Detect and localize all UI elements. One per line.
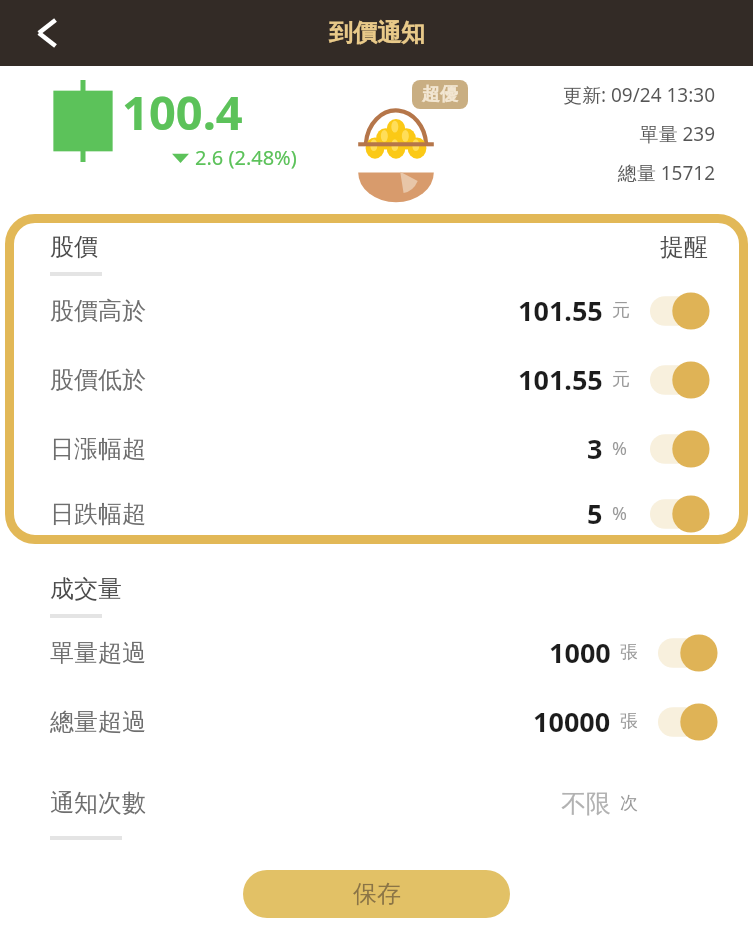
staticText: 1000	[549, 634, 611, 671]
staticText: 100.4	[122, 80, 243, 144]
staticText: 成交量	[50, 574, 122, 604]
staticText: 股價	[50, 232, 98, 262]
button[interactable]: 保存	[243, 870, 510, 918]
staticText: 到價通知	[329, 18, 425, 48]
staticText: 單量 239	[639, 121, 715, 147]
staticText: 通知次數	[50, 788, 146, 818]
staticText: %	[612, 501, 627, 526]
button[interactable]: 日漲幅超	[5, 414, 748, 483]
staticText: 10000	[533, 703, 611, 740]
button[interactable]: 通知次數	[0, 776, 753, 830]
staticText: 提醒	[660, 232, 708, 262]
staticText: 元	[612, 299, 630, 322]
staticText: 2.6 (2.48%)	[195, 144, 297, 171]
staticText: 張	[620, 641, 638, 664]
staticText: 元	[612, 368, 630, 391]
button[interactable]: 股價高於	[5, 276, 748, 345]
staticText: 股價高於	[50, 296, 146, 326]
staticText: 不限	[561, 788, 611, 819]
staticText: 次	[620, 792, 638, 815]
staticText: 單量超過	[50, 638, 146, 668]
staticText: 超優	[422, 83, 458, 106]
staticText: 5	[587, 495, 603, 532]
button[interactable]: 總量超過	[0, 687, 753, 756]
staticText: 日漲幅超	[50, 434, 146, 464]
staticText: %	[612, 436, 627, 461]
button[interactable]: Toggle alert	[658, 703, 720, 741]
staticText: 保存	[353, 879, 401, 909]
button[interactable]: 單量超過	[0, 618, 753, 687]
button[interactable]: Toggle alert	[650, 361, 712, 399]
button[interactable]: Toggle alert	[658, 634, 720, 672]
staticText: 101.55	[518, 361, 603, 398]
button[interactable]: Back	[16, 7, 68, 59]
button[interactable]: 日跌幅超	[5, 483, 748, 544]
staticText: 日跌幅超	[50, 499, 146, 529]
button[interactable]: Toggle alert	[650, 292, 712, 330]
button[interactable]: 股價低於	[5, 345, 748, 414]
staticText: 101.55	[518, 292, 603, 329]
staticText: 總量超過	[50, 707, 146, 737]
staticText: 股價低於	[50, 365, 146, 395]
staticText: 3	[587, 430, 603, 467]
button[interactable]: Toggle alert	[650, 430, 712, 468]
staticText: 更新: 09/24 13:30	[562, 82, 715, 108]
button[interactable]: Toggle alert	[650, 495, 712, 533]
staticText: 張	[620, 710, 638, 733]
staticText: 總量 15712	[617, 160, 715, 186]
